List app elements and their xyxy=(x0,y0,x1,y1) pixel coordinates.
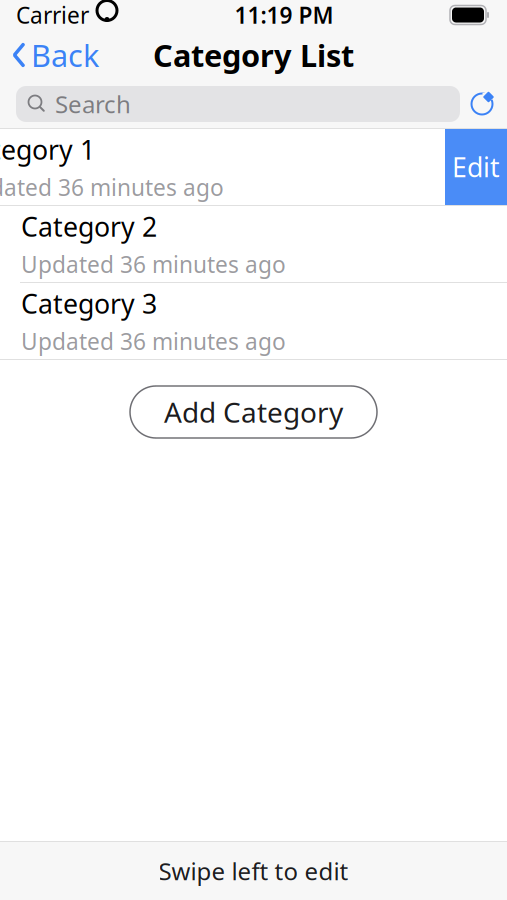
staticText: Updated 36 minutes ago xyxy=(21,249,286,279)
button[interactable]: Search xyxy=(16,86,460,122)
staticText: Category 3 xyxy=(21,286,157,321)
staticText: Back xyxy=(31,35,99,75)
staticText: Updated 36 minutes ago xyxy=(21,326,286,356)
button[interactable]: Category 1 xyxy=(0,129,445,205)
staticText: Swipe left to edit xyxy=(158,855,348,887)
button[interactable]: Back xyxy=(0,29,111,81)
button[interactable]: Add Category xyxy=(130,386,377,438)
staticText: Category 2 xyxy=(21,209,157,244)
staticText: Category List xyxy=(153,35,354,75)
button[interactable]: Category 3 xyxy=(0,283,507,359)
staticText: Search xyxy=(55,88,131,120)
button[interactable]: Edit xyxy=(445,129,507,205)
button[interactable]: Refresh xyxy=(460,84,504,124)
staticText: 11:19 PM xyxy=(234,0,333,30)
staticText: Edit xyxy=(452,149,500,185)
button[interactable]: Category 2 xyxy=(0,206,507,282)
staticText: Updated 36 minutes ago xyxy=(0,172,224,202)
staticText: Add Category xyxy=(164,393,343,431)
staticText: Carrier xyxy=(16,0,89,30)
staticText: Category 1 xyxy=(0,132,95,167)
